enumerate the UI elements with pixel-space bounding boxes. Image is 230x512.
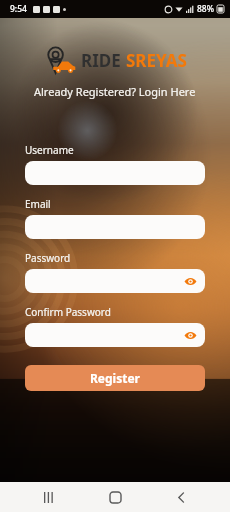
staticText: Username	[25, 143, 74, 157]
button[interactable]: Already Registered? Login Here	[0, 83, 230, 100]
button[interactable]: Show password	[25, 323, 205, 347]
button[interactable]: Register	[25, 365, 205, 391]
button[interactable]: Back	[164, 482, 198, 512]
button[interactable]: Show password	[25, 269, 205, 293]
button[interactable]: Home	[98, 482, 132, 512]
button[interactable]: Recent apps	[32, 482, 66, 512]
button[interactable]: Show password	[183, 328, 197, 342]
button[interactable]	[25, 215, 205, 239]
staticText: Password	[25, 251, 71, 265]
staticText: Confirm Password	[25, 305, 111, 319]
button[interactable]: Show password	[183, 274, 197, 288]
staticText: Email	[25, 197, 51, 211]
staticText: RIDE	[81, 49, 126, 72]
staticText: Register	[90, 370, 140, 386]
staticText: Already Registered? Login Here	[34, 84, 196, 99]
staticText: SREYAS	[126, 49, 187, 72]
button[interactable]	[25, 161, 205, 185]
staticText: 9:54	[10, 3, 27, 15]
staticText: 88%	[197, 3, 214, 15]
